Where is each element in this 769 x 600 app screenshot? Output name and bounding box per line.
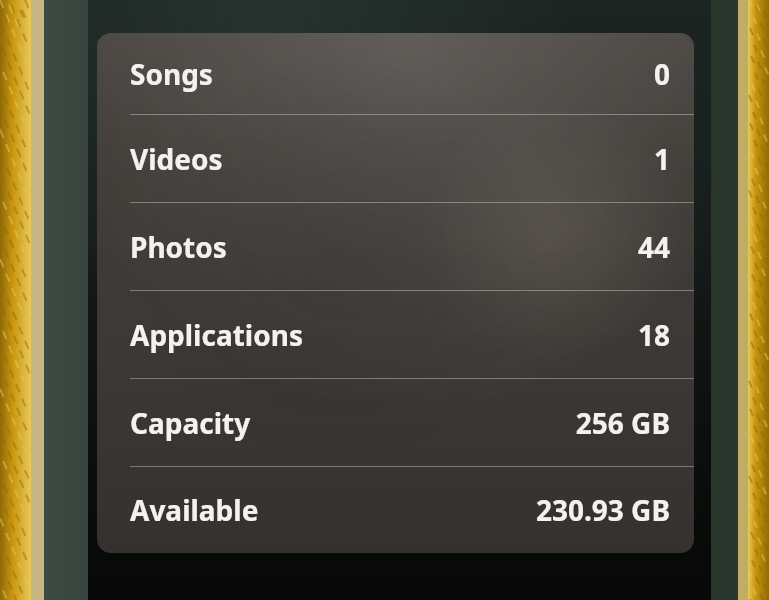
- staticText: 256 GB: [575, 404, 670, 442]
- staticText: Songs: [130, 55, 213, 93]
- button[interactable]: Applications: [97, 291, 694, 378]
- button[interactable]: Photos: [97, 203, 694, 290]
- staticText: Applications: [130, 316, 303, 354]
- button[interactable]: Videos: [97, 115, 694, 202]
- staticText: Videos: [130, 140, 223, 178]
- staticText: 230.93 GB: [535, 491, 670, 529]
- staticText: 18: [637, 316, 670, 354]
- staticText: Capacity: [130, 404, 251, 442]
- staticText: Photos: [130, 228, 227, 266]
- staticText: 0: [653, 55, 670, 93]
- button[interactable]: Available: [97, 467, 694, 553]
- staticText: 44: [637, 228, 670, 266]
- staticText: 1: [653, 140, 670, 178]
- button[interactable]: Songs: [97, 33, 694, 114]
- button[interactable]: Capacity: [97, 379, 694, 466]
- staticText: Available: [130, 491, 259, 529]
